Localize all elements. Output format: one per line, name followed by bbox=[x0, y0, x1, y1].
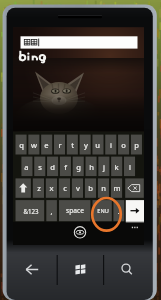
staticText: . bbox=[117, 206, 120, 216]
staticText: , bbox=[50, 206, 53, 216]
button[interactable]: w bbox=[28, 135, 39, 155]
staticText: d bbox=[50, 162, 55, 172]
staticText: p bbox=[134, 140, 139, 150]
staticText: v bbox=[76, 183, 80, 193]
button[interactable]: c bbox=[59, 178, 70, 197]
button[interactable]: &123 bbox=[16, 200, 45, 221]
staticText: y bbox=[84, 140, 88, 150]
staticText: j bbox=[103, 162, 105, 172]
staticText: m bbox=[113, 183, 121, 193]
button[interactable]: . bbox=[113, 200, 124, 221]
button[interactable]: p bbox=[131, 135, 142, 155]
button[interactable]: e bbox=[41, 135, 52, 155]
staticText: z bbox=[37, 183, 41, 193]
staticText: ENU bbox=[97, 207, 109, 215]
staticText: q bbox=[19, 140, 24, 150]
staticText: g bbox=[76, 162, 81, 172]
staticText: &123 bbox=[23, 207, 39, 215]
button[interactable]: l bbox=[124, 157, 135, 177]
button[interactable]: x bbox=[46, 178, 57, 197]
staticText: r bbox=[58, 140, 62, 150]
staticText: k bbox=[114, 162, 119, 172]
staticText: space bbox=[66, 206, 84, 215]
button[interactable]: f bbox=[60, 157, 71, 177]
staticText: e bbox=[44, 140, 49, 150]
button[interactable]: m bbox=[111, 178, 122, 197]
button[interactable]: q bbox=[16, 135, 27, 155]
button[interactable]: a bbox=[21, 157, 32, 177]
staticText: o bbox=[121, 140, 126, 150]
staticText: u bbox=[95, 140, 100, 150]
staticText: n bbox=[101, 183, 106, 193]
staticText: t bbox=[71, 140, 74, 150]
button[interactable]: k bbox=[111, 157, 122, 177]
button[interactable]: t bbox=[67, 135, 78, 155]
button[interactable]: j bbox=[98, 157, 109, 177]
staticText: s bbox=[38, 162, 42, 172]
button[interactable]: b bbox=[85, 178, 96, 197]
staticText: b bbox=[88, 183, 93, 193]
button[interactable]: o bbox=[118, 135, 129, 155]
button[interactable]: , bbox=[46, 200, 57, 221]
staticText: c bbox=[63, 183, 67, 193]
staticText: l bbox=[129, 162, 131, 172]
button[interactable]: s bbox=[34, 157, 45, 177]
button[interactable]: u bbox=[92, 135, 103, 155]
button[interactable]: i bbox=[105, 135, 116, 155]
staticText: f bbox=[64, 162, 67, 172]
button[interactable]: y bbox=[80, 135, 91, 155]
staticText: a bbox=[24, 162, 29, 172]
staticText: i bbox=[110, 140, 112, 150]
button[interactable]: Phone showing Bing search with on-screen… bbox=[0, 0, 161, 300]
button[interactable]: ENU bbox=[93, 200, 112, 221]
staticText: h bbox=[89, 162, 94, 172]
staticText: x bbox=[49, 183, 54, 193]
button[interactable]: z bbox=[33, 178, 44, 197]
button[interactable]: g bbox=[73, 157, 84, 177]
button[interactable]: r bbox=[54, 135, 65, 155]
button[interactable]: v bbox=[72, 178, 83, 197]
button[interactable]: space bbox=[59, 200, 90, 221]
button[interactable]: h bbox=[86, 157, 97, 177]
button[interactable]: d bbox=[47, 157, 58, 177]
button[interactable]: n bbox=[98, 178, 109, 197]
staticText: w bbox=[31, 140, 37, 150]
